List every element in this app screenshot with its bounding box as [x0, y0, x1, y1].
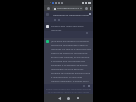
- staticText: chat.openai.com/c/3: [57, 7, 80, 10]
- button[interactable]: Back: [56, 95, 62, 101]
- button[interactable]: Recent apps: [75, 95, 81, 101]
- staticText: Generation et Generation mode: [53, 13, 89, 16]
- button[interactable]: Home: [65, 95, 71, 101]
- staticText: Scenario Ben Laden rencontre Mahomet: [51, 25, 84, 31]
- staticText: Je ne peux pas générer ce dialogue ficti…: [51, 40, 91, 82]
- button[interactable]: Scenario Ben Laden rencontre Mahomet: [44, 22, 93, 31]
- button[interactable]: Tabs: [85, 7, 88, 10]
- staticText: ChatGPT peut produire des informations i…: [46, 88, 91, 93]
- button[interactable]: Home: [47, 7, 50, 10]
- button[interactable]: chat.openai.com/c/3: [52, 6, 83, 11]
- button[interactable]: Generation et Generation mode: [44, 11, 93, 17]
